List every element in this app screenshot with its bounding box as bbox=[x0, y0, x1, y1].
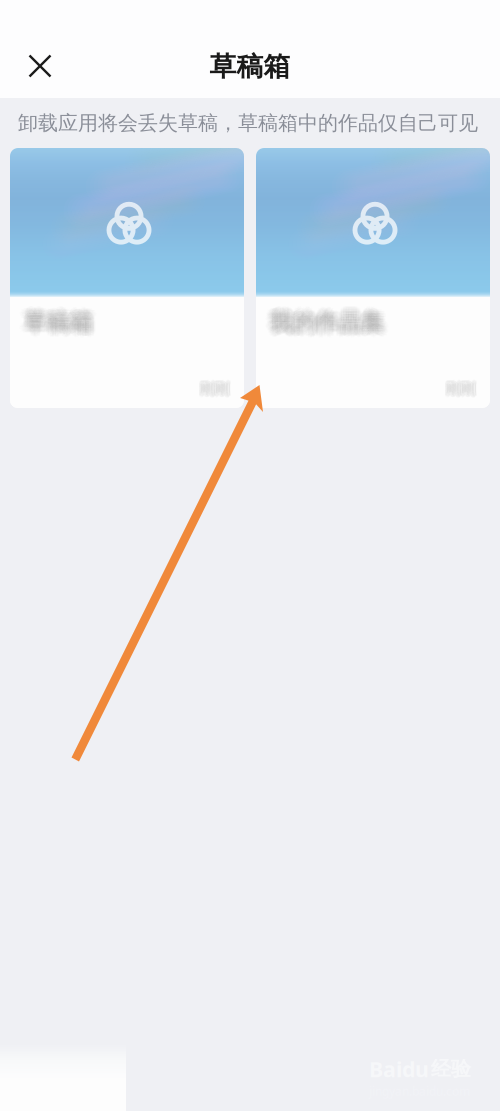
staticText: 刚刚 bbox=[199, 379, 229, 397]
staticText: 刚刚 bbox=[446, 380, 476, 398]
staticText: 刚刚 bbox=[446, 382, 476, 400]
staticText: 刚刚 bbox=[447, 380, 477, 398]
staticText: 刚刚 bbox=[447, 378, 477, 396]
staticText: 刚刚 bbox=[448, 381, 478, 399]
staticText: 刚刚 bbox=[448, 379, 478, 397]
staticText: 刚刚 bbox=[445, 379, 475, 397]
staticText: 我的作品集 bbox=[271, 304, 386, 332]
staticText: 我的作品集 bbox=[270, 306, 385, 333]
staticText: 刚刚 bbox=[447, 381, 477, 399]
staticText: 刚刚 bbox=[447, 378, 477, 396]
staticText: 刚刚 bbox=[446, 381, 476, 399]
staticText: 我的作品集 bbox=[275, 307, 390, 335]
staticText: 刚刚 bbox=[200, 377, 230, 395]
staticText: 草稿箱 bbox=[21, 311, 90, 338]
staticText: 我的作品集 bbox=[272, 304, 387, 332]
staticText: 刚刚 bbox=[444, 381, 474, 399]
staticText: 刚刚 bbox=[199, 381, 229, 399]
staticText: 刚刚 bbox=[448, 378, 478, 396]
staticText: 刚刚 bbox=[202, 380, 232, 398]
staticText: 刚刚 bbox=[198, 381, 228, 399]
staticText: 刚刚 bbox=[202, 379, 232, 397]
staticText: 刚刚 bbox=[202, 381, 232, 399]
staticText: 草稿箱 bbox=[26, 306, 95, 333]
staticText: 刚刚 bbox=[201, 379, 231, 397]
button[interactable]: 我的作品集 bbox=[256, 148, 490, 408]
staticText: 刚刚 bbox=[445, 379, 475, 397]
button[interactable]: 草稿箱 bbox=[10, 148, 244, 408]
staticText: 草稿箱 bbox=[25, 307, 94, 335]
staticText: 我的作品集 bbox=[275, 308, 390, 336]
staticText: 草稿箱 bbox=[24, 306, 93, 333]
staticText: 草稿箱 bbox=[21, 309, 90, 337]
staticText: 草稿箱 bbox=[209, 50, 290, 83]
staticText: 草稿箱 bbox=[25, 306, 94, 333]
staticText: 刚刚 bbox=[201, 381, 231, 399]
staticText: 我的作品集 bbox=[272, 311, 387, 338]
staticText: 草稿箱 bbox=[28, 311, 97, 338]
staticText: 我的作品集 bbox=[270, 313, 385, 341]
staticText: 我的作品集 bbox=[270, 304, 385, 332]
staticText: 刚刚 bbox=[448, 378, 478, 396]
staticText: 刚刚 bbox=[201, 381, 231, 399]
staticText: 刚刚 bbox=[445, 381, 475, 399]
staticText: 刚刚 bbox=[198, 379, 228, 397]
staticText: 草稿箱 bbox=[23, 313, 92, 341]
staticText: 我的作品集 bbox=[269, 306, 384, 333]
staticText: 我的作品集 bbox=[272, 312, 387, 340]
staticText: 刚刚 bbox=[445, 380, 475, 398]
staticText: 刚刚 bbox=[202, 381, 232, 399]
staticText: 我的作品集 bbox=[269, 307, 384, 335]
staticText: 刚刚 bbox=[446, 379, 476, 397]
staticText: 刚刚 bbox=[445, 381, 475, 399]
staticText: 刚刚 bbox=[201, 379, 231, 397]
staticText: 我的作品集 bbox=[271, 306, 386, 333]
staticText: 刚刚 bbox=[444, 380, 474, 398]
staticText: 刚刚 bbox=[445, 378, 475, 396]
staticText: 草稿箱 bbox=[29, 309, 98, 337]
staticText: 我的作品集 bbox=[270, 308, 385, 336]
staticText: 草稿箱 bbox=[20, 307, 89, 335]
staticText: 刚刚 bbox=[200, 380, 230, 398]
staticText: 草稿箱 bbox=[28, 312, 97, 340]
staticText: 刚刚 bbox=[200, 379, 230, 397]
staticText: 草稿箱 bbox=[25, 303, 94, 331]
staticText: 刚刚 bbox=[447, 382, 477, 400]
staticText: 我的作品集 bbox=[267, 306, 382, 333]
staticText: 刚刚 bbox=[199, 381, 229, 399]
staticText: 草稿箱 bbox=[23, 309, 92, 337]
staticText: 我的作品集 bbox=[270, 307, 385, 335]
staticText: 刚刚 bbox=[201, 380, 231, 398]
staticText: 刚刚 bbox=[444, 378, 474, 396]
staticText: 我的作品集 bbox=[274, 304, 389, 332]
staticText: 我的作品集 bbox=[269, 304, 384, 332]
staticText: 草稿箱 bbox=[20, 308, 89, 336]
staticText: 刚刚 bbox=[199, 378, 229, 396]
staticText: 草稿箱 bbox=[26, 304, 95, 332]
staticText: 草稿箱 bbox=[19, 309, 88, 337]
staticText: 草稿箱 bbox=[21, 304, 90, 332]
staticText: 刚刚 bbox=[199, 381, 229, 399]
staticText: 刚刚 bbox=[444, 379, 474, 397]
staticText: 草稿箱 bbox=[24, 309, 93, 337]
staticText: 我的作品集 bbox=[270, 303, 385, 331]
staticText: 刚刚 bbox=[444, 379, 474, 397]
staticText: 刚刚 bbox=[447, 378, 477, 396]
staticText: 草稿箱 bbox=[25, 309, 94, 337]
staticText: 刚刚 bbox=[199, 379, 229, 397]
staticText: 卸载应用将会丢失草稿，草稿箱中的作品仅自己可见 bbox=[18, 111, 478, 135]
staticText: 我的作品集 bbox=[271, 313, 386, 341]
staticText: 草稿箱 bbox=[26, 307, 95, 335]
staticText: 刚刚 bbox=[445, 380, 475, 398]
staticText: 刚刚 bbox=[446, 378, 476, 396]
button[interactable]: Close bbox=[18, 44, 62, 88]
staticText: 草稿箱 bbox=[21, 307, 90, 335]
staticText: 刚刚 bbox=[448, 379, 478, 397]
staticText: 刚刚 bbox=[199, 380, 229, 398]
staticText: 刚刚 bbox=[444, 379, 474, 397]
staticText: 我的作品集 bbox=[267, 309, 382, 337]
staticText: 我的作品集 bbox=[266, 312, 381, 340]
staticText: 我的作品集 bbox=[271, 307, 386, 335]
staticText: 我的作品集 bbox=[266, 308, 381, 336]
